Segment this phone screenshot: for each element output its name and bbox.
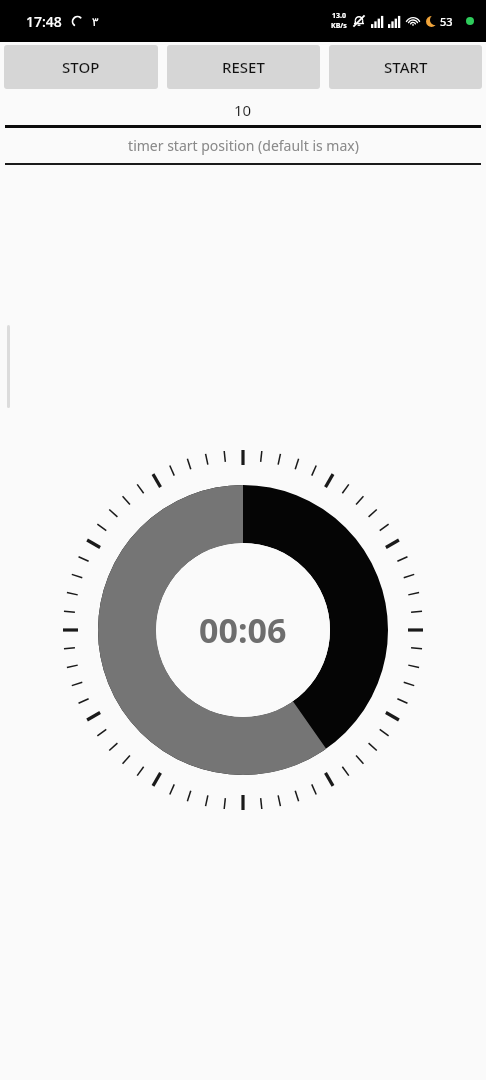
button[interactable]: STOP: [4, 45, 158, 89]
staticText: 00:06: [199, 607, 287, 653]
button[interactable]: timer start position (default is max): [0, 128, 486, 165]
staticText: RESET: [222, 57, 265, 77]
staticText: 10: [234, 100, 252, 120]
staticText: ٣: [92, 15, 99, 29]
button[interactable]: 10: [0, 95, 486, 128]
staticText: 13.0: [332, 11, 346, 21]
button[interactable]: START: [329, 45, 482, 89]
staticText: STOP: [62, 57, 100, 77]
button[interactable]: RESET: [167, 45, 320, 89]
staticText: 17:48: [26, 12, 62, 31]
staticText: START: [384, 57, 428, 77]
staticText: KB/s: [331, 21, 347, 31]
staticText: timer start position (default is max): [128, 136, 359, 155]
staticText: 53: [440, 14, 453, 29]
button[interactable]: Timer dial 00:06: [58, 445, 428, 815]
